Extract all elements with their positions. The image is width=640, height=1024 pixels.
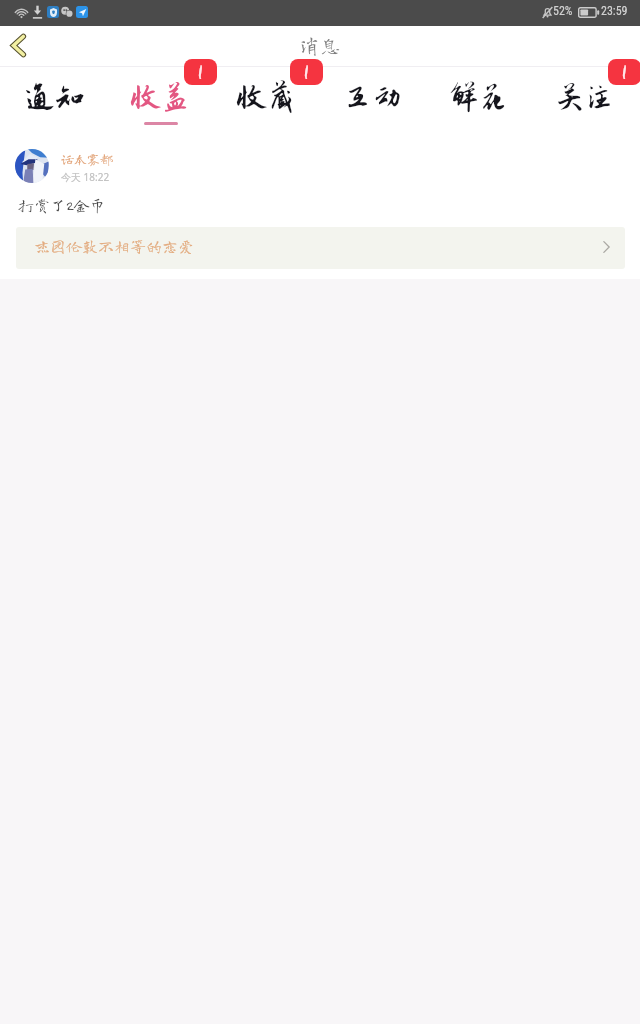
button[interactable]: Back <box>0 26 40 67</box>
staticText: 鲜花 <box>449 81 509 114</box>
button[interactable]: 通知 <box>0 67 106 130</box>
staticText: 23:59 <box>601 4 628 18</box>
button[interactable]: 关注 <box>530 67 636 130</box>
button[interactable]: Author avatar <box>15 149 49 183</box>
staticText: 话本雾都 <box>61 153 114 166</box>
staticText: 1 <box>622 62 627 82</box>
button[interactable]: 杰园伦敦不相等的恋爱 <box>16 227 625 269</box>
button[interactable]: 互动 <box>318 67 424 130</box>
button[interactable]: 鲜花 <box>424 67 530 130</box>
staticText: 收藏 <box>237 81 297 114</box>
button[interactable]: 收益 <box>106 67 212 130</box>
button[interactable]: 话本雾都 <box>58 150 128 184</box>
staticText: 1 <box>304 62 309 82</box>
staticText: 今天 18:22 <box>61 170 110 184</box>
staticText: 收益 <box>131 81 191 114</box>
staticText: 互动 <box>343 81 403 114</box>
staticText: 打赏了2金币 <box>18 197 106 213</box>
staticText: 通知 <box>25 81 85 114</box>
staticText: 杰园伦敦不相等的恋爱 <box>34 238 195 254</box>
staticText: 52% <box>553 4 573 18</box>
button[interactable]: 收藏 <box>212 67 318 130</box>
staticText: 消息 <box>299 35 341 56</box>
staticText: 关注 <box>555 81 615 114</box>
staticText: 1 <box>198 62 203 82</box>
